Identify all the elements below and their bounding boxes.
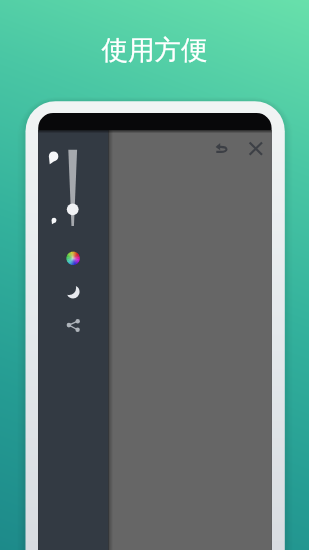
button[interactable]: Small brush size [46,212,64,230]
staticText: 使用方便 [0,33,309,66]
button[interactable]: Close [244,136,269,161]
button[interactable]: Brush size slider [61,144,85,232]
button[interactable]: Night mode [61,280,85,304]
button[interactable]: Undo [209,136,234,161]
button[interactable]: Colour picker [61,246,85,270]
button[interactable]: Share [61,313,85,337]
button[interactable]: Large brush size [44,146,66,170]
